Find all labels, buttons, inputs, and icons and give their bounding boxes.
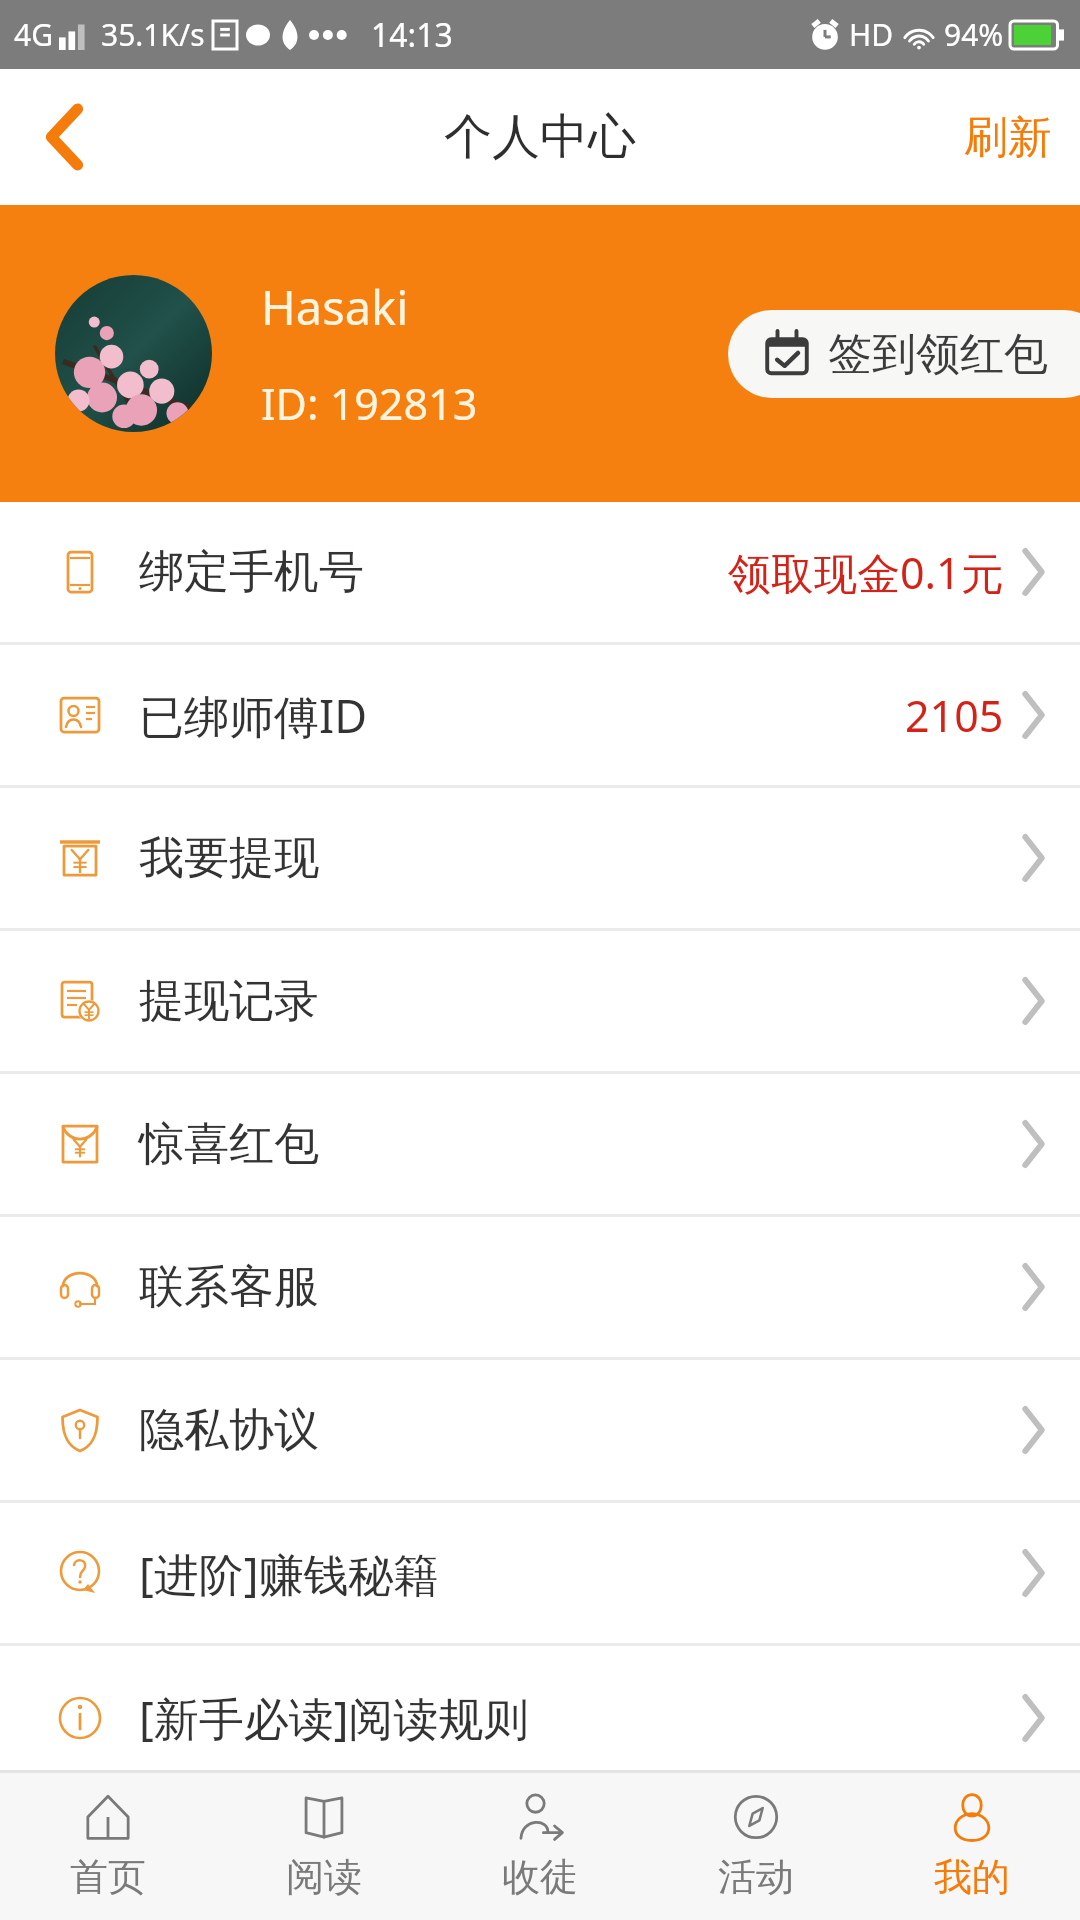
button[interactable]: 隐私协议 [0, 1360, 1080, 1503]
button[interactable]: 收徒 [432, 1773, 648, 1920]
staticText: ID: 192813 [261, 374, 478, 433]
button[interactable]: 阅读 [216, 1773, 432, 1920]
button[interactable]: Back [0, 69, 130, 205]
staticText: 我要提现 [139, 830, 319, 887]
staticText: [新手必读]阅读规则 [139, 1687, 529, 1748]
staticText: 14:13 [371, 13, 453, 57]
button[interactable]: [进阶]赚钱秘籍 [0, 1503, 1080, 1646]
button[interactable]: 绑定手机号 [0, 502, 1080, 645]
staticText: Hasaki [261, 275, 409, 339]
staticText: 2105 [905, 686, 1004, 745]
staticText: HD [849, 14, 894, 55]
button[interactable]: 已绑师傅ID [0, 645, 1080, 788]
button[interactable]: 提现记录 [0, 931, 1080, 1074]
staticText: 领取现金0.1元 [728, 543, 1004, 602]
staticText: 35.1K/s [101, 14, 205, 55]
staticText: 已绑师傅ID [139, 685, 368, 746]
staticText: 绑定手机号 [139, 544, 364, 601]
staticText: 首页 [70, 1853, 146, 1901]
button[interactable]: 惊喜红包 [0, 1074, 1080, 1217]
staticText: 活动 [718, 1853, 794, 1901]
staticText: 隐私协议 [139, 1402, 319, 1459]
button[interactable]: 刷新 [936, 69, 1080, 205]
staticText: 94% [944, 14, 1004, 55]
staticText: 刷新 [964, 110, 1052, 165]
button[interactable]: 活动 [648, 1773, 864, 1920]
button[interactable]: 我要提现 [0, 788, 1080, 931]
button[interactable]: 签到领红包 [728, 310, 1080, 398]
staticText: 个人中心 [444, 107, 636, 167]
staticText: 收徒 [502, 1853, 578, 1901]
staticText: 4G [14, 14, 53, 55]
button[interactable]: 首页 [0, 1773, 216, 1920]
staticText: 提现记录 [139, 973, 319, 1030]
button[interactable]: [新手必读]阅读规则 [0, 1646, 1080, 1789]
staticText: 联系客服 [139, 1259, 319, 1316]
button[interactable]: 我的 [864, 1773, 1080, 1920]
staticText: 我的 [934, 1853, 1010, 1901]
staticText: [进阶]赚钱秘籍 [139, 1543, 439, 1604]
staticText: 惊喜红包 [139, 1116, 319, 1173]
staticText: 阅读 [286, 1853, 362, 1901]
staticText: 签到领红包 [828, 327, 1048, 382]
button[interactable]: 联系客服 [0, 1217, 1080, 1360]
